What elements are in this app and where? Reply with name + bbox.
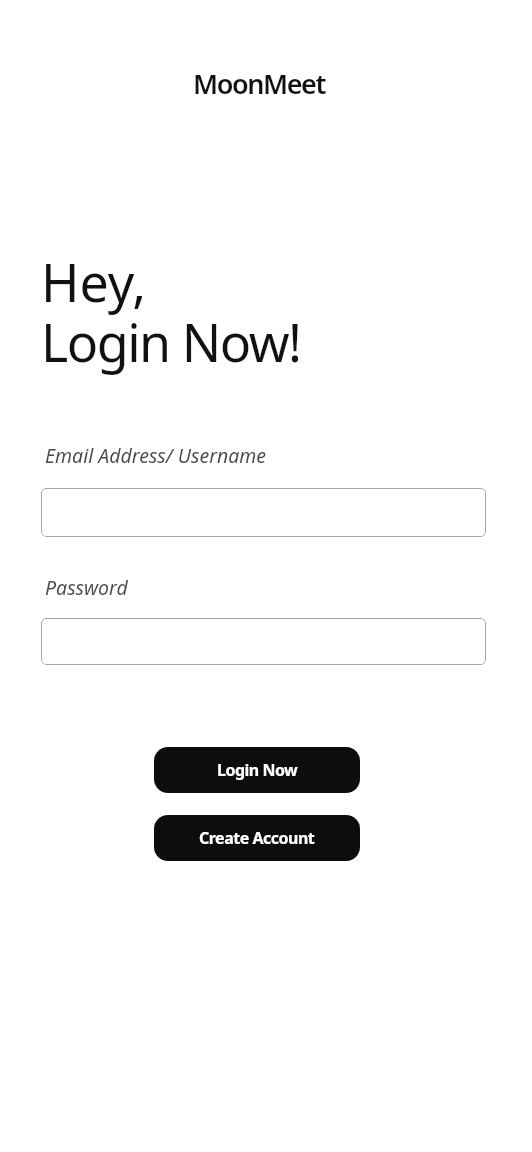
staticText: Password: [45, 574, 128, 601]
staticText: Email Address/ Username: [45, 442, 267, 469]
button[interactable]: [41, 488, 486, 537]
staticText: Create Account: [199, 827, 315, 849]
staticText: MoonMeet: [193, 65, 326, 102]
button[interactable]: [41, 618, 486, 665]
staticText: Hey,: [41, 246, 147, 317]
button[interactable]: Login Now: [154, 747, 360, 793]
staticText: Login Now!: [41, 306, 301, 377]
button[interactable]: Create Account: [154, 815, 360, 861]
staticText: Login Now: [217, 759, 298, 781]
